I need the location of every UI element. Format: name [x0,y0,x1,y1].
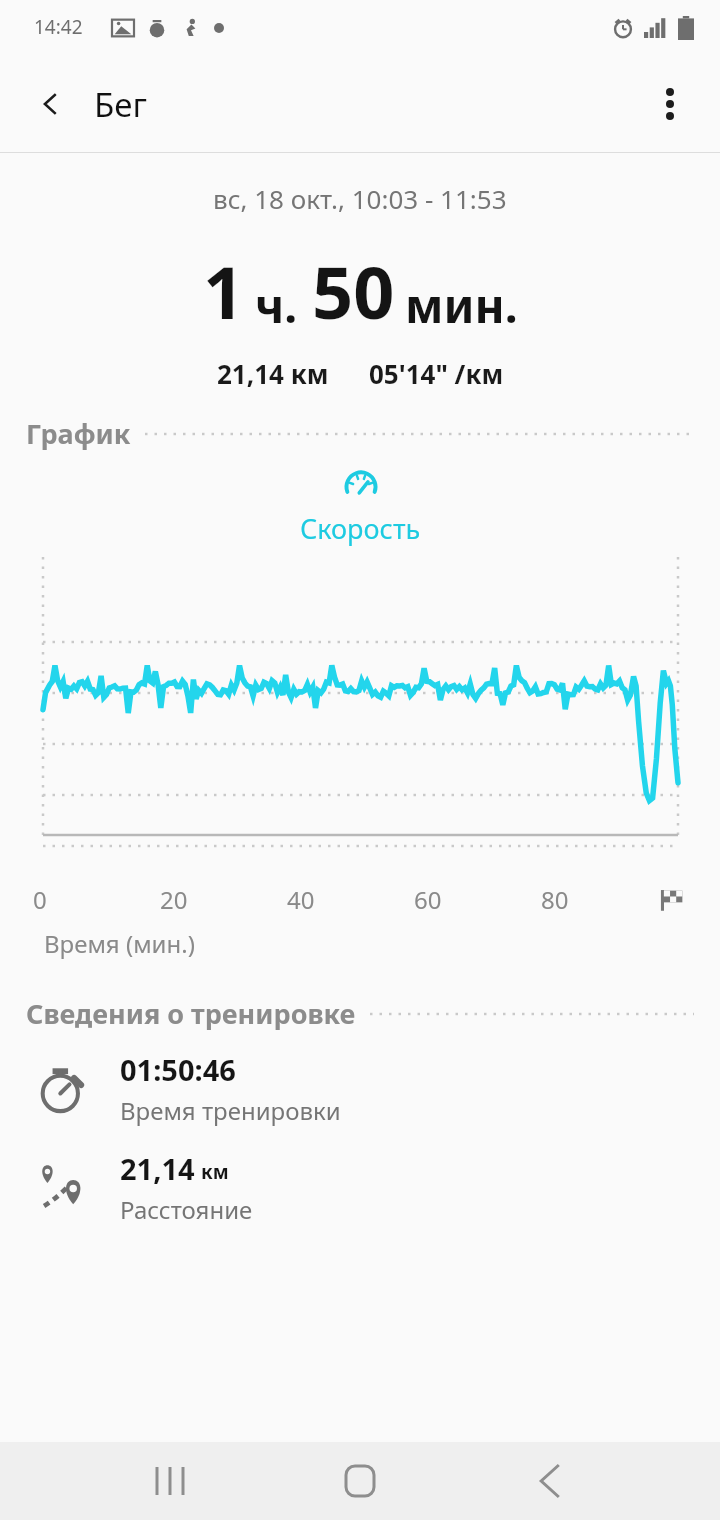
staticText: 60 [414,883,442,916]
staticText: Время (мин.) [44,927,195,960]
staticText: Расстояние [120,1193,253,1226]
button[interactable]: Back [22,76,78,132]
button[interactable]: 21,14 [0,1149,720,1226]
staticText: 20 [160,883,188,916]
staticText: 80 [541,883,569,916]
staticText: 05'14" /км [369,356,504,391]
staticText: 40 [287,883,315,916]
staticText: Время тренировки [120,1094,341,1127]
button[interactable]: Home [330,1451,390,1511]
staticText: вс, 18 окт., 10:03 - 11:53 [213,181,507,216]
button[interactable]: Speed chart [300,464,421,547]
staticText: 14:42 [34,14,83,40]
staticText: км [201,1159,229,1185]
staticText: Бег [94,82,147,127]
button[interactable]: More options [642,76,698,132]
staticText: ч. [255,274,298,337]
staticText: 50 [312,242,395,340]
staticText: 1 [203,242,245,340]
staticText: Скорость [300,510,421,547]
button[interactable]: 01:50:46 [0,1050,720,1127]
button[interactable]: Recent apps [140,1451,200,1511]
staticText: 0 [33,883,47,916]
staticText: Сведения о тренировке [26,995,356,1032]
staticText: 21,14 [120,1149,195,1188]
staticText: График [26,415,131,452]
staticText: 01:50:46 [120,1050,236,1089]
button[interactable]: Back [520,1451,580,1511]
staticText: 21,14 км [217,356,329,391]
staticText: мин. [405,274,518,337]
